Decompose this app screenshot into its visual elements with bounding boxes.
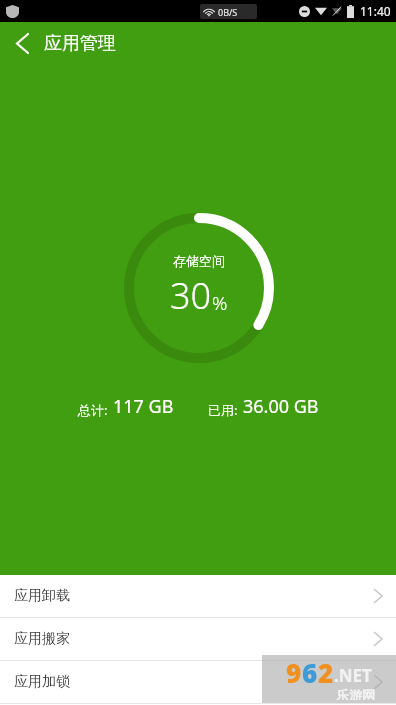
staticText: 2 (318, 655, 334, 690)
staticText: 应用加锁 (14, 673, 70, 691)
staticText: 应用管理 (44, 32, 116, 55)
button[interactable]: 应用加锁 (0, 661, 396, 703)
staticText: 已用: (208, 401, 238, 419)
staticText: 0B/S (218, 6, 238, 18)
staticText: 乐游网 (336, 687, 375, 700)
staticText: 6 (302, 655, 318, 690)
button[interactable]: 应用卸载 (0, 575, 396, 617)
staticText: 11:40 (360, 3, 391, 19)
staticText: 存储空间 (173, 253, 225, 269)
staticText: 应用搬家 (14, 630, 70, 648)
staticText: 应用卸载 (14, 587, 70, 605)
button[interactable]: Back (0, 22, 44, 65)
staticText: 117 GB (113, 394, 174, 419)
staticText: % (212, 290, 228, 316)
button[interactable]: 应用搬家 (0, 618, 396, 660)
staticText: 36.00 GB (243, 394, 319, 419)
staticText: 30 (170, 271, 212, 320)
staticText: 总计: (78, 401, 108, 419)
staticText: .NET (334, 664, 372, 687)
staticText: 9 (286, 655, 302, 690)
